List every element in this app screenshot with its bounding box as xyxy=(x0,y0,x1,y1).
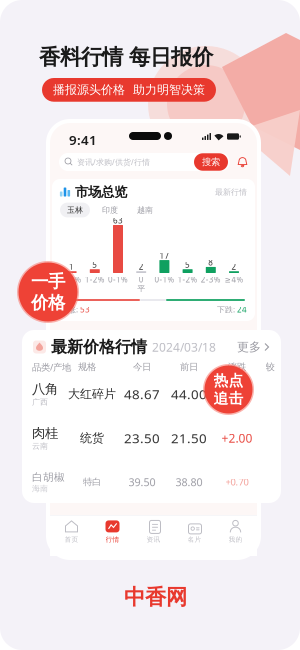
staticText: 2 xyxy=(139,261,144,272)
staticText: 品类/产地 xyxy=(32,361,71,373)
staticText: 越南 xyxy=(137,205,153,215)
staticText: 云南 xyxy=(32,441,48,451)
staticText: 39.50 xyxy=(128,475,155,489)
button[interactable]: 八角 xyxy=(22,376,281,416)
staticText: 更多 xyxy=(237,340,261,354)
staticText: 前日 xyxy=(180,361,198,373)
staticText: 1-2% xyxy=(178,274,198,285)
staticText: 特白 xyxy=(83,476,101,488)
staticText: 0 xyxy=(139,274,144,285)
button[interactable]: 资讯 xyxy=(133,515,174,547)
staticText: 大红碎片 xyxy=(68,387,116,401)
button[interactable]: 中香网 xyxy=(124,584,187,610)
staticText: +4.67 xyxy=(221,386,252,402)
staticText: 资讯/求购/供货/行情 xyxy=(77,157,150,167)
staticText: 38.80 xyxy=(175,475,202,489)
button[interactable]: 我的 xyxy=(215,515,256,547)
staticText: 播报源头价格 助力明智决策 xyxy=(53,82,205,97)
staticText: 白胡椒 xyxy=(32,470,65,484)
staticText: 下跌: xyxy=(217,304,237,315)
staticText: 市场总览 xyxy=(75,184,127,200)
button[interactable]: 首页 xyxy=(51,515,92,547)
staticText: 0-1% xyxy=(154,274,174,285)
staticText: 一手 xyxy=(31,271,65,292)
staticText: 平 xyxy=(137,284,145,293)
button[interactable]: 更多 xyxy=(237,340,270,354)
staticText: 玉林 xyxy=(67,205,83,215)
button[interactable]: 越南 xyxy=(130,203,160,217)
staticText: 1 xyxy=(69,261,74,272)
staticText: 1-2% xyxy=(85,274,105,285)
button[interactable]: 名片 xyxy=(174,515,215,547)
staticText: 名片 xyxy=(187,535,201,544)
staticText: 搜索 xyxy=(202,156,220,168)
staticText: 最新行情 xyxy=(215,187,247,197)
button[interactable]: 印度 xyxy=(95,203,125,217)
staticText: 中香网 xyxy=(124,584,187,610)
staticText: 2 xyxy=(231,261,236,272)
staticText: 53 xyxy=(80,304,90,315)
staticText: +0.70 xyxy=(225,476,248,488)
staticText: 香料行情 每日报价 xyxy=(39,44,213,70)
staticText: 规格 xyxy=(78,361,96,373)
button[interactable]: 肉桂 xyxy=(22,420,281,460)
staticText: 热点 xyxy=(213,371,243,389)
staticText: 追击 xyxy=(213,389,243,407)
staticText: 2-3% xyxy=(62,274,82,285)
staticText: 统货 xyxy=(80,431,104,445)
staticText: 上涨: xyxy=(60,304,80,315)
button[interactable]: 白胡椒 xyxy=(22,464,281,504)
staticText: 44.00 xyxy=(171,385,207,403)
staticText: 63 xyxy=(113,215,123,226)
button[interactable]: 热点 xyxy=(203,364,254,415)
staticText: 21.50 xyxy=(171,429,207,447)
staticText: +2.00 xyxy=(221,430,252,446)
staticText: 17 xyxy=(159,250,169,261)
staticText: 9:41 xyxy=(69,131,97,149)
staticText: 2-3% xyxy=(201,274,221,285)
staticText: 5 xyxy=(185,259,190,270)
staticText: 涨跌 xyxy=(228,361,246,373)
staticText: 资讯 xyxy=(146,535,160,544)
staticText: 肉桂 xyxy=(32,425,58,441)
staticText: 海南 xyxy=(32,484,48,493)
staticText: 价格 xyxy=(31,292,65,313)
staticText: 5 xyxy=(92,259,97,270)
staticText: 较 xyxy=(265,361,274,373)
staticText: 24 xyxy=(237,304,247,315)
staticText: 23.50 xyxy=(124,429,160,447)
staticText: 印度 xyxy=(102,205,118,215)
button[interactable]: 一手 xyxy=(17,261,79,323)
staticText: 48.67 xyxy=(124,385,160,403)
staticText: 八角 xyxy=(32,381,58,397)
staticText: 今日 xyxy=(133,361,151,373)
staticText: 首页 xyxy=(64,535,78,544)
staticText: 我的 xyxy=(228,535,242,544)
staticText: 8 xyxy=(208,257,213,268)
staticText: 最新价格行情 xyxy=(51,337,147,357)
button[interactable]: 播报源头价格 助力明智决策 xyxy=(42,78,216,102)
staticText: 2024/03/18 xyxy=(152,339,216,355)
button[interactable]: 玉林 xyxy=(60,203,90,217)
staticText: 行情 xyxy=(105,535,119,544)
staticText: 0-1% xyxy=(108,274,128,285)
staticText: 广西 xyxy=(32,397,48,407)
button[interactable]: 行情 xyxy=(92,515,133,547)
staticText: ≥4% xyxy=(224,274,243,285)
